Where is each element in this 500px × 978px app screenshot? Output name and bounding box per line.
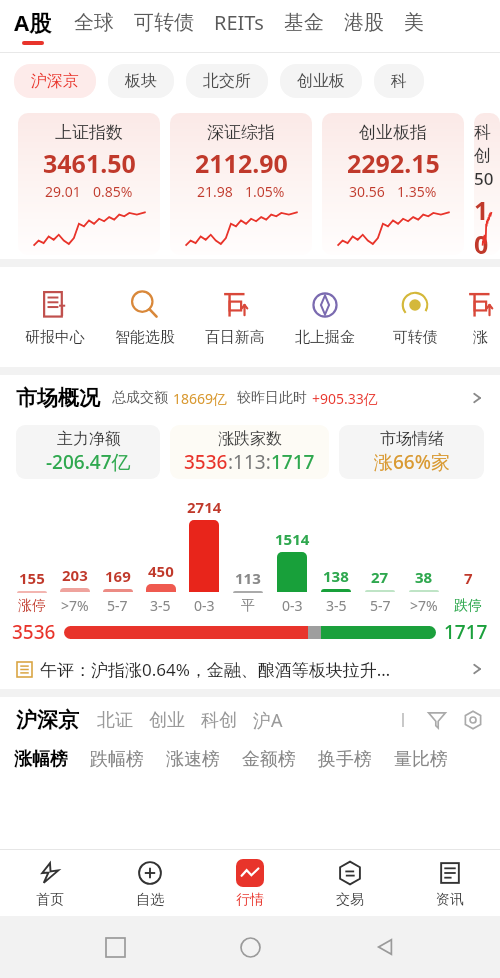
- staticText: 2292.15: [347, 146, 440, 180]
- button[interactable]: 基金: [284, 10, 344, 43]
- staticText: 1717: [271, 449, 315, 475]
- staticText: >7%: [61, 596, 89, 615]
- button[interactable]: 涨幅榜: [14, 748, 90, 771]
- staticText: 155: [19, 568, 45, 588]
- staticText: 跌幅榜: [90, 748, 144, 771]
- button[interactable]: 可转债: [370, 288, 460, 347]
- staticText: REITs: [214, 9, 264, 36]
- button[interactable]: 市场情绪: [339, 425, 484, 479]
- staticText: 1055.1: [474, 193, 500, 255]
- staticText: 全球: [74, 10, 114, 35]
- staticText: 资讯: [436, 891, 464, 909]
- button[interactable]: REITs: [214, 9, 284, 44]
- button[interactable]: 首页: [0, 850, 100, 916]
- staticText: 金额榜: [242, 748, 296, 771]
- button[interactable]: 行情: [200, 850, 300, 916]
- button[interactable]: 涨速榜: [166, 748, 242, 771]
- staticText: 市场概况: [16, 385, 100, 411]
- button[interactable]: 交易: [300, 850, 400, 916]
- staticText: 交易: [336, 891, 364, 909]
- staticText: 智能选股: [115, 328, 175, 347]
- button[interactable]: Recents: [95, 927, 135, 967]
- button[interactable]: 自选: [100, 850, 200, 916]
- staticText: 研报中心: [25, 328, 85, 347]
- button[interactable]: Back: [365, 927, 405, 967]
- button[interactable]: Home: [230, 927, 270, 967]
- staticText: 深证综指: [207, 122, 275, 143]
- button[interactable]: 科: [374, 64, 424, 98]
- staticText: 创业板指: [359, 122, 427, 143]
- button[interactable]: 科创50: [474, 113, 500, 255]
- staticText: 换手榜: [318, 748, 372, 771]
- staticText: 较昨日此时: [237, 389, 307, 407]
- button[interactable]: 深证综指: [170, 113, 312, 255]
- button[interactable]: Filter: [424, 707, 450, 733]
- staticText: 市场情绪: [380, 429, 444, 449]
- staticText: 量比榜: [394, 748, 448, 771]
- staticText: 5-7: [370, 596, 391, 615]
- staticText: 38: [415, 567, 433, 587]
- button[interactable]: 研报中心: [10, 288, 100, 347]
- staticText: 自选: [136, 891, 164, 909]
- staticText: 7: [464, 568, 473, 588]
- staticText: 首页: [36, 891, 64, 909]
- button[interactable]: 美: [404, 10, 444, 43]
- button[interactable]: 量比榜: [394, 748, 470, 771]
- staticText: 跌停: [454, 597, 482, 615]
- staticText: A股: [14, 7, 52, 37]
- staticText: 可转债: [393, 328, 438, 347]
- staticText: 1514: [275, 529, 310, 549]
- button[interactable]: 跌幅榜: [90, 748, 166, 771]
- staticText: 5-7: [107, 596, 128, 615]
- staticText: 基金: [284, 10, 324, 35]
- button[interactable]: 沪深京: [16, 707, 79, 733]
- button[interactable]: 午评：沪指涨0.64%，金融、酿酒等板块拉升…: [16, 649, 484, 689]
- staticText: 涨66%家: [374, 449, 450, 475]
- staticText: 1.05%: [245, 182, 285, 201]
- button[interactable]: 换手榜: [318, 748, 394, 771]
- button[interactable]: 智能选股: [100, 288, 190, 347]
- button[interactable]: 涨: [460, 288, 500, 347]
- staticText: 27: [371, 567, 389, 587]
- button[interactable]: 北上掘金: [280, 288, 370, 347]
- staticText: 涨停: [18, 597, 46, 615]
- staticText: 169: [105, 566, 131, 586]
- staticText: >7%: [410, 596, 438, 615]
- button[interactable]: 沪A: [253, 708, 299, 733]
- staticText: 科创: [201, 709, 237, 732]
- button[interactable]: 沪深京: [14, 64, 96, 98]
- staticText: 港股: [344, 10, 384, 35]
- button[interactable]: 科创: [201, 709, 253, 732]
- button[interactable]: 上证指数: [18, 113, 160, 255]
- button[interactable]: 北证: [97, 709, 149, 732]
- staticText: 3536: [184, 449, 228, 475]
- staticText: 涨跌家数: [218, 429, 282, 449]
- button[interactable]: 市场概况: [16, 375, 484, 421]
- button[interactable]: 主力净额: [16, 425, 160, 479]
- button[interactable]: 百日新高: [190, 288, 280, 347]
- button[interactable]: A股: [14, 7, 74, 45]
- staticText: 113: [235, 568, 261, 588]
- staticText: 板块: [125, 71, 157, 91]
- button[interactable]: 板块: [108, 64, 174, 98]
- staticText: :113:: [228, 449, 271, 475]
- staticText: 创业板: [297, 71, 345, 91]
- button[interactable]: 创业板: [280, 64, 362, 98]
- button[interactable]: 全球: [74, 10, 134, 43]
- button[interactable]: Settings: [460, 707, 486, 733]
- button[interactable]: 北交所: [186, 64, 268, 98]
- staticText: 30.56: [349, 182, 385, 201]
- staticText: 涨: [473, 328, 488, 347]
- button[interactable]: 涨跌家数: [170, 425, 329, 479]
- button[interactable]: More: [392, 709, 414, 731]
- staticText: 18669亿: [173, 389, 228, 408]
- staticText: 北交所: [203, 71, 251, 91]
- button[interactable]: 可转债: [134, 10, 214, 43]
- button[interactable]: 创业板指: [322, 113, 464, 255]
- button[interactable]: 资讯: [400, 850, 500, 916]
- button[interactable]: 金额榜: [242, 748, 318, 771]
- button[interactable]: 创业: [149, 709, 201, 732]
- staticText: 主力净额: [57, 429, 121, 449]
- button[interactable]: 港股: [344, 10, 404, 43]
- staticText: +905.33亿: [312, 389, 378, 408]
